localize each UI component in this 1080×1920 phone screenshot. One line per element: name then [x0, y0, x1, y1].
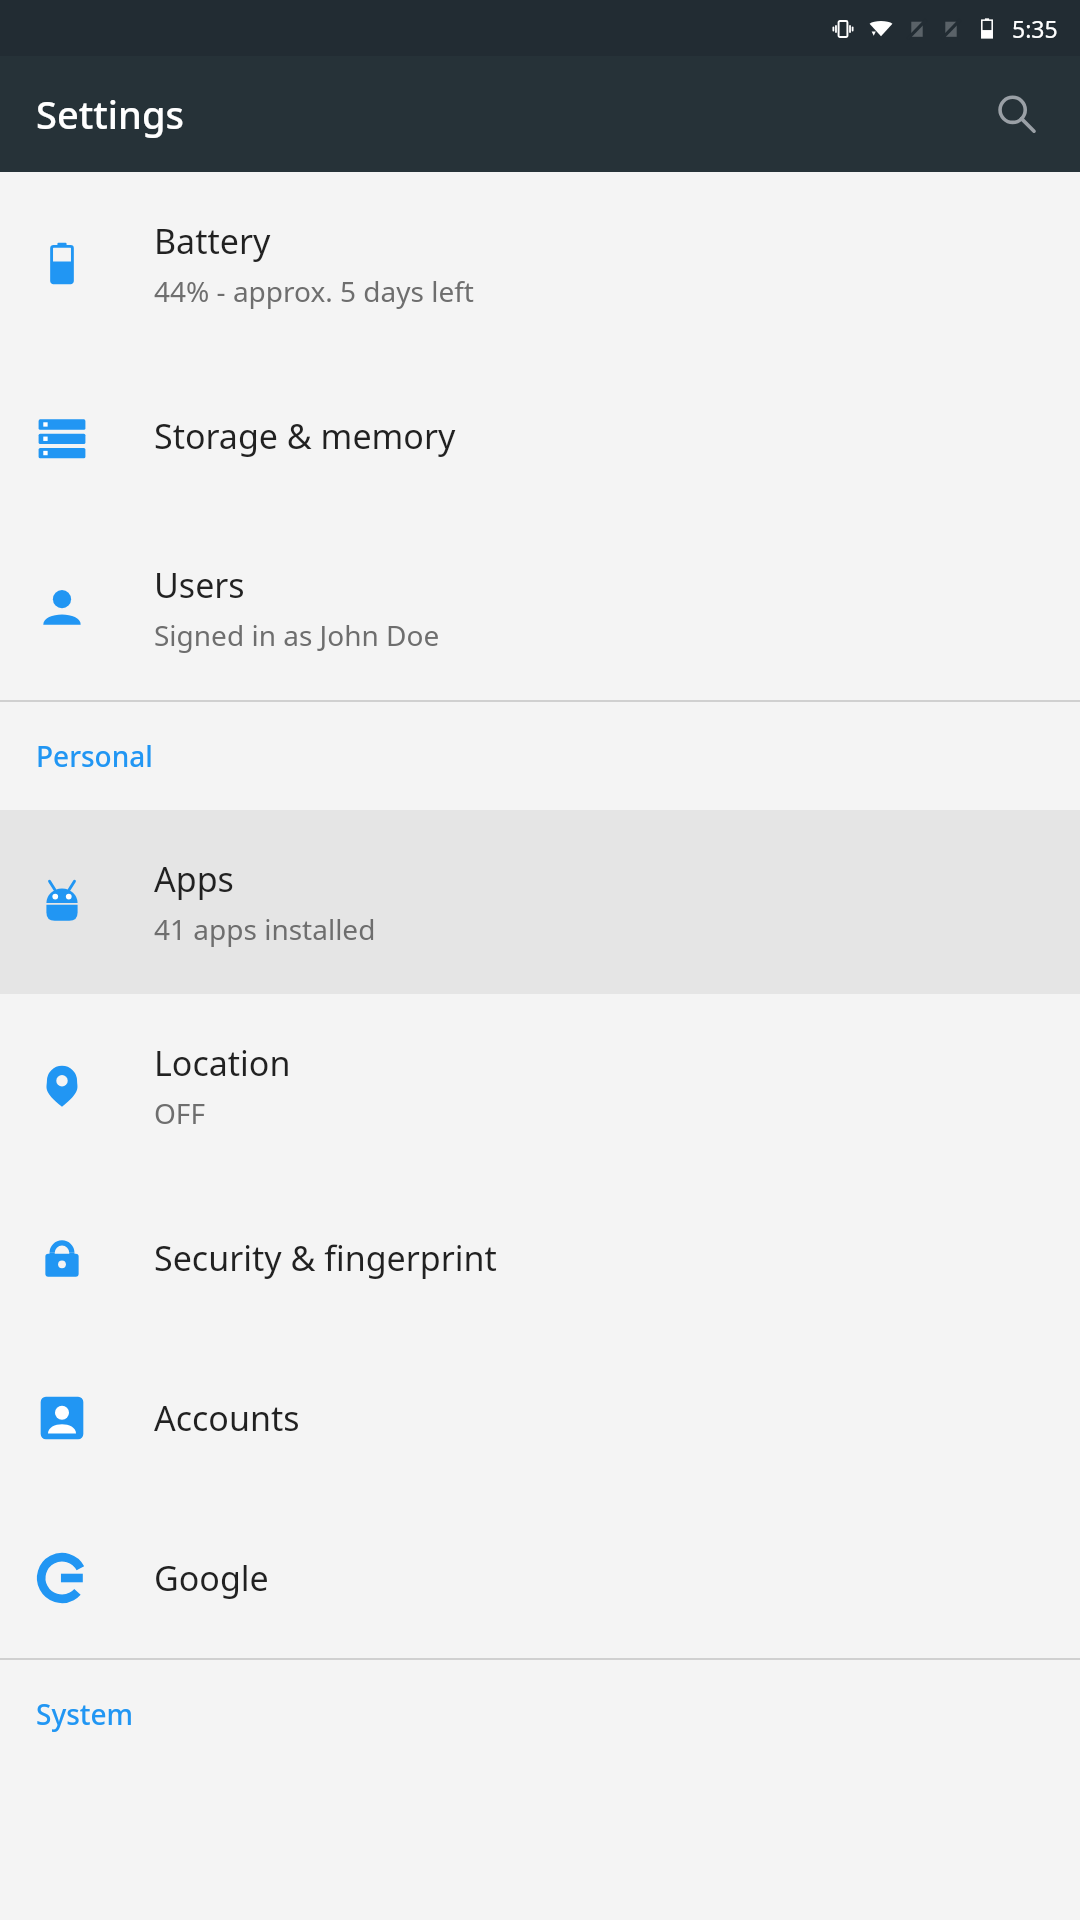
staticText: Settings	[36, 88, 184, 140]
staticText: Accounts	[154, 1395, 300, 1441]
staticText: Users	[154, 562, 245, 608]
button[interactable]: Search	[976, 74, 1056, 154]
staticText: 41 apps installed	[154, 910, 376, 948]
button[interactable]: Storage & memory	[0, 356, 1080, 516]
staticText: 5:35	[1012, 13, 1058, 44]
staticText: Personal	[36, 737, 153, 775]
staticText: Location	[154, 1040, 291, 1086]
button[interactable]: Users	[0, 516, 1080, 700]
button[interactable]: Apps	[0, 810, 1080, 994]
staticText: Storage & memory	[154, 413, 456, 459]
staticText: 44% - approx. 5 days left	[154, 272, 474, 310]
staticText: System	[36, 1695, 134, 1733]
staticText: Google	[154, 1555, 269, 1601]
button[interactable]: Google	[0, 1498, 1080, 1658]
button[interactable]: Location	[0, 994, 1080, 1178]
button[interactable]: Battery	[0, 172, 1080, 356]
button[interactable]: Accounts	[0, 1338, 1080, 1498]
staticText: Battery	[154, 218, 271, 264]
button[interactable]: Security & fingerprint	[0, 1178, 1080, 1338]
staticText: OFF	[154, 1094, 205, 1132]
staticText: Signed in as John Doe	[154, 616, 440, 654]
staticText: Apps	[154, 856, 234, 902]
staticText: Security & fingerprint	[154, 1235, 497, 1281]
